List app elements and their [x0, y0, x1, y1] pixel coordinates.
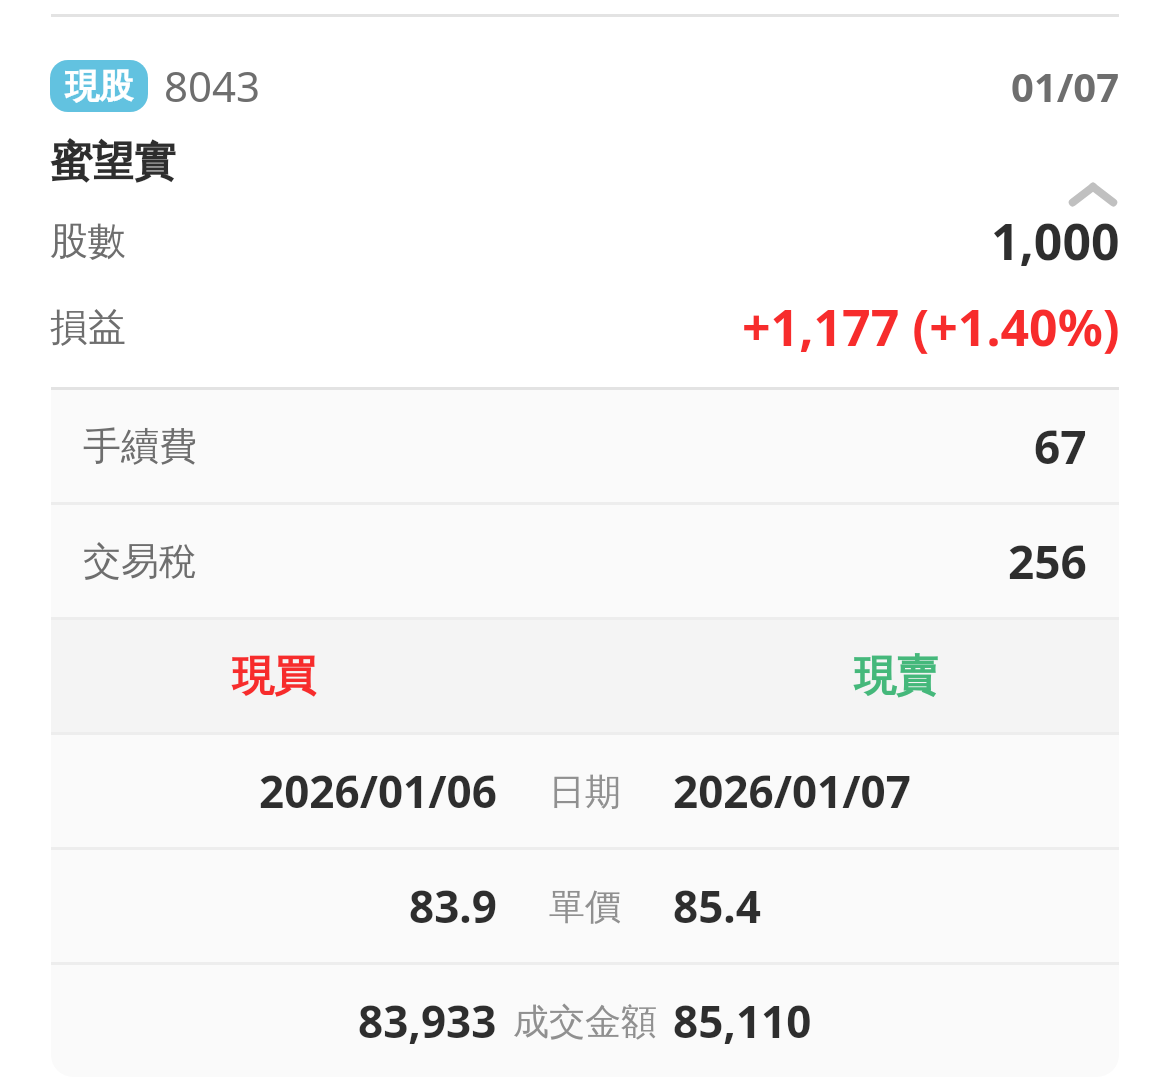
staticText: 成交金額: [513, 999, 657, 1044]
staticText: 1,000: [991, 207, 1120, 275]
staticText: 現股: [65, 65, 133, 108]
button[interactable]: 83,933: [51, 965, 1119, 1077]
staticText: 現買: [232, 650, 316, 703]
staticText: 交易稅: [83, 537, 197, 585]
staticText: 股數: [50, 217, 126, 265]
staticText: +1,177 (+1.40%): [742, 293, 1120, 361]
staticText: 蜜望實: [50, 136, 176, 189]
staticText: 67: [1034, 415, 1087, 478]
staticText: 01/07: [1011, 59, 1120, 113]
staticText: 256: [1008, 530, 1087, 593]
staticText: 83,933: [358, 991, 497, 1051]
staticText: 85,110: [673, 991, 812, 1051]
staticText: 83.9: [409, 876, 497, 936]
button[interactable]: 手續費: [51, 390, 1119, 502]
button[interactable]: 83.9: [51, 850, 1119, 962]
staticText: 85.4: [673, 876, 761, 936]
staticText: 手續費: [83, 422, 197, 470]
staticText: 現賣: [854, 650, 938, 703]
button[interactable]: 2026/01/06: [51, 735, 1119, 847]
staticText: 損益: [50, 303, 126, 351]
button[interactable]: Collapse: [1064, 167, 1122, 225]
button[interactable]: 交易稅: [51, 505, 1119, 617]
staticText: 8043: [164, 57, 261, 114]
staticText: 日期: [549, 769, 621, 814]
staticText: 2026/01/07: [673, 761, 911, 821]
staticText: 單價: [549, 884, 621, 929]
staticText: 2026/01/06: [259, 761, 497, 821]
button[interactable]: 現買: [51, 620, 1119, 732]
button[interactable]: 現股: [50, 60, 148, 112]
